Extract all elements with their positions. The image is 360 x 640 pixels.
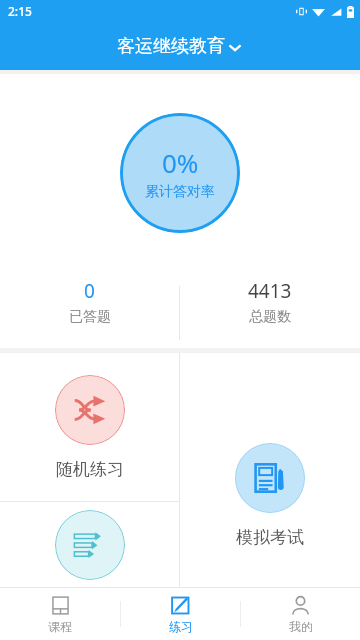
button[interactable]: 顺序练习 xyxy=(0,502,179,587)
staticText: 累计答对率 xyxy=(145,183,215,201)
staticText: 练习 xyxy=(169,619,193,634)
staticText: 0 xyxy=(84,278,95,304)
button[interactable]: 随机练习 xyxy=(0,353,179,501)
staticText: 4413 xyxy=(248,278,292,304)
other: 随机练习 xyxy=(73,393,107,427)
staticText: 2:15 xyxy=(8,3,32,19)
button[interactable]: 我的 xyxy=(241,588,360,640)
staticText: 课程 xyxy=(48,619,72,634)
staticText: 客运继续教育 xyxy=(117,35,225,58)
button[interactable]: 客运继续教育 xyxy=(117,35,243,58)
staticText: 总题数 xyxy=(249,308,291,326)
button[interactable]: 课程 xyxy=(0,588,120,640)
button[interactable]: 0 xyxy=(0,278,179,326)
button[interactable]: 模拟考试 xyxy=(180,421,360,569)
button[interactable]: 4413 xyxy=(180,278,360,326)
staticText: 我的 xyxy=(289,619,313,634)
staticText: 模拟考试 xyxy=(236,527,304,548)
other: 顺序练习 xyxy=(73,528,107,562)
button[interactable]: 0% xyxy=(120,113,240,233)
other: 模拟考试 xyxy=(252,460,288,496)
staticText: 已答题 xyxy=(69,308,111,326)
staticText: 随机练习 xyxy=(56,459,124,480)
button[interactable]: 练习 xyxy=(121,588,240,640)
staticText: 0% xyxy=(162,145,199,180)
